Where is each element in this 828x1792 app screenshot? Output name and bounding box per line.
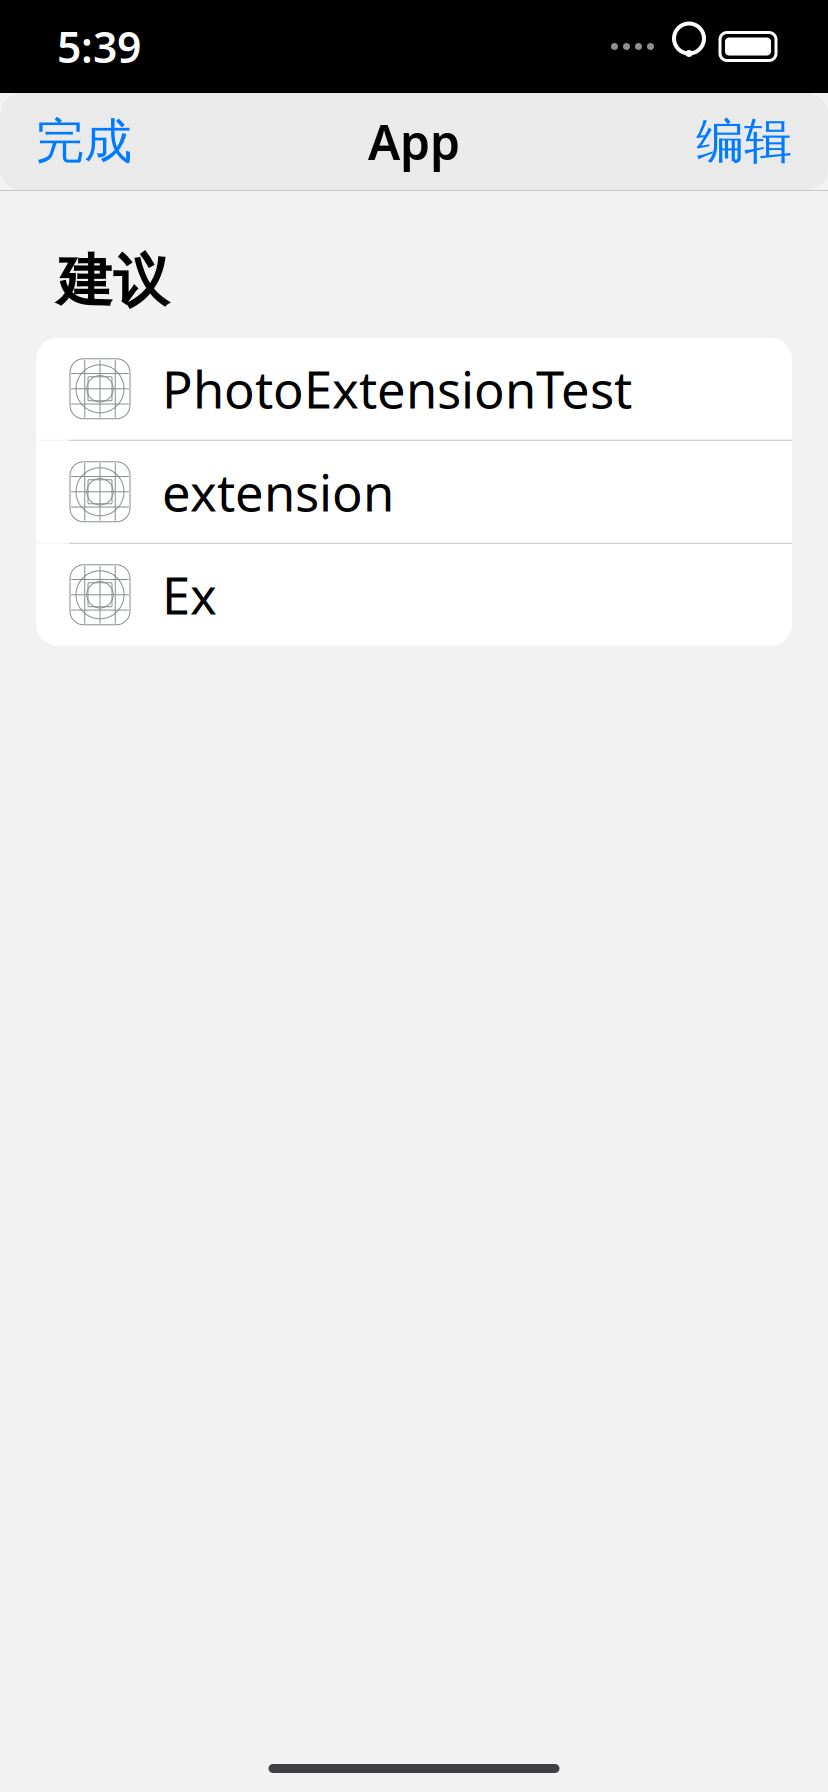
staticText: extension — [162, 458, 394, 525]
staticText: 建议 — [57, 247, 169, 316]
button[interactable]: extension — [36, 441, 792, 543]
staticText: 5:39 — [57, 18, 141, 75]
button[interactable]: 完成 — [24, 102, 144, 181]
staticText: App — [368, 110, 460, 173]
staticText: PhotoExtensionTest — [162, 355, 632, 422]
staticText: 完成 — [36, 112, 132, 171]
button[interactable]: 编辑 — [684, 102, 804, 181]
button[interactable]: Ex — [36, 544, 792, 646]
staticText: Ex — [162, 561, 217, 628]
staticText: 编辑 — [696, 112, 792, 171]
button[interactable]: PhotoExtensionTest — [36, 338, 792, 440]
